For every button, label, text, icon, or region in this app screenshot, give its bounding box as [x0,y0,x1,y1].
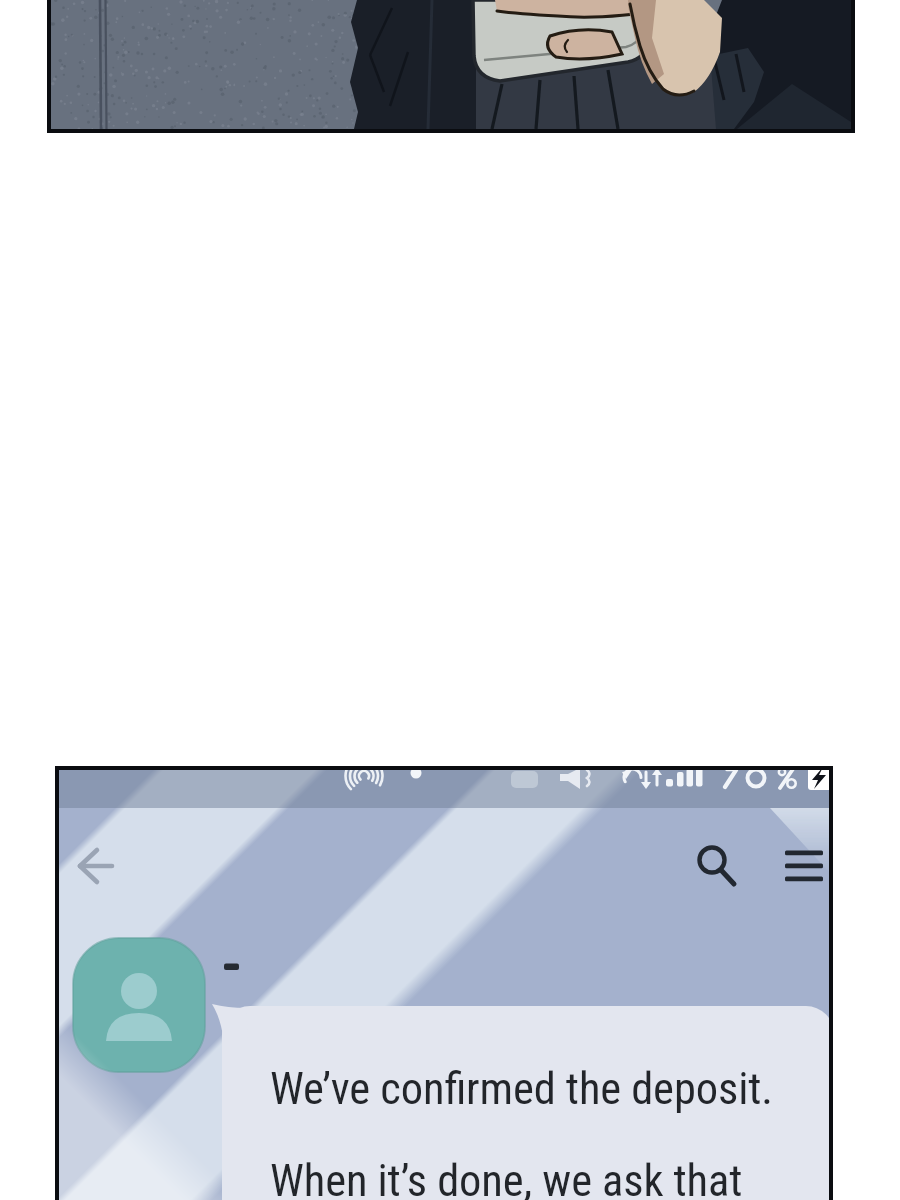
button[interactable] [68,844,120,888]
staticText: We’ve confirmed the deposit. [270,1063,773,1115]
button[interactable] [73,938,205,1072]
button[interactable] [778,840,830,888]
button[interactable] [692,838,744,890]
staticText: When it’s done, we ask that [270,1155,743,1200]
